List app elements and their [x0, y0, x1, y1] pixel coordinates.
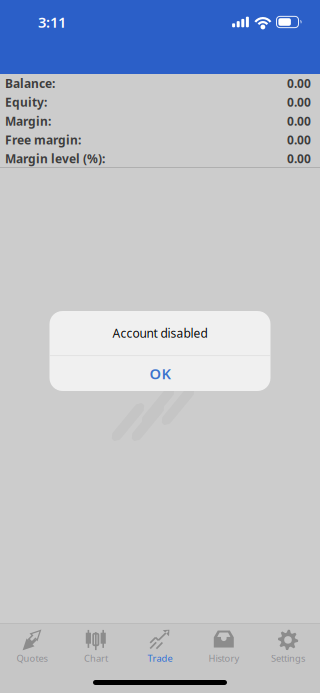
staticText: Equity: — [5, 94, 47, 110]
staticText: Balance: — [5, 75, 55, 91]
staticText: Account disabled — [112, 325, 207, 341]
button[interactable]: OK — [49, 356, 270, 391]
button[interactable]: Quotes — [0, 624, 64, 670]
button[interactable]: Chart — [64, 624, 128, 670]
staticText: 0.00 — [287, 94, 311, 110]
staticText: OK — [149, 364, 170, 383]
button[interactable]: History — [192, 624, 256, 670]
staticText: Quotes — [16, 652, 47, 664]
staticText: Margin level (%): — [5, 151, 105, 166]
staticText: History — [208, 652, 239, 664]
staticText: Margin: — [5, 113, 51, 129]
staticText: Free margin: — [5, 132, 81, 148]
staticText: 0.00 — [287, 132, 311, 148]
staticText: Settings — [271, 652, 305, 664]
staticText: 0.00 — [287, 113, 311, 129]
staticText: 3:11 — [38, 12, 66, 32]
button[interactable]: Trade — [128, 624, 192, 670]
staticText: Chart — [84, 652, 108, 664]
staticText: Trade — [147, 652, 172, 664]
staticText: 0.00 — [287, 151, 311, 166]
button[interactable]: Settings — [256, 624, 320, 670]
staticText: 0.00 — [287, 75, 311, 91]
